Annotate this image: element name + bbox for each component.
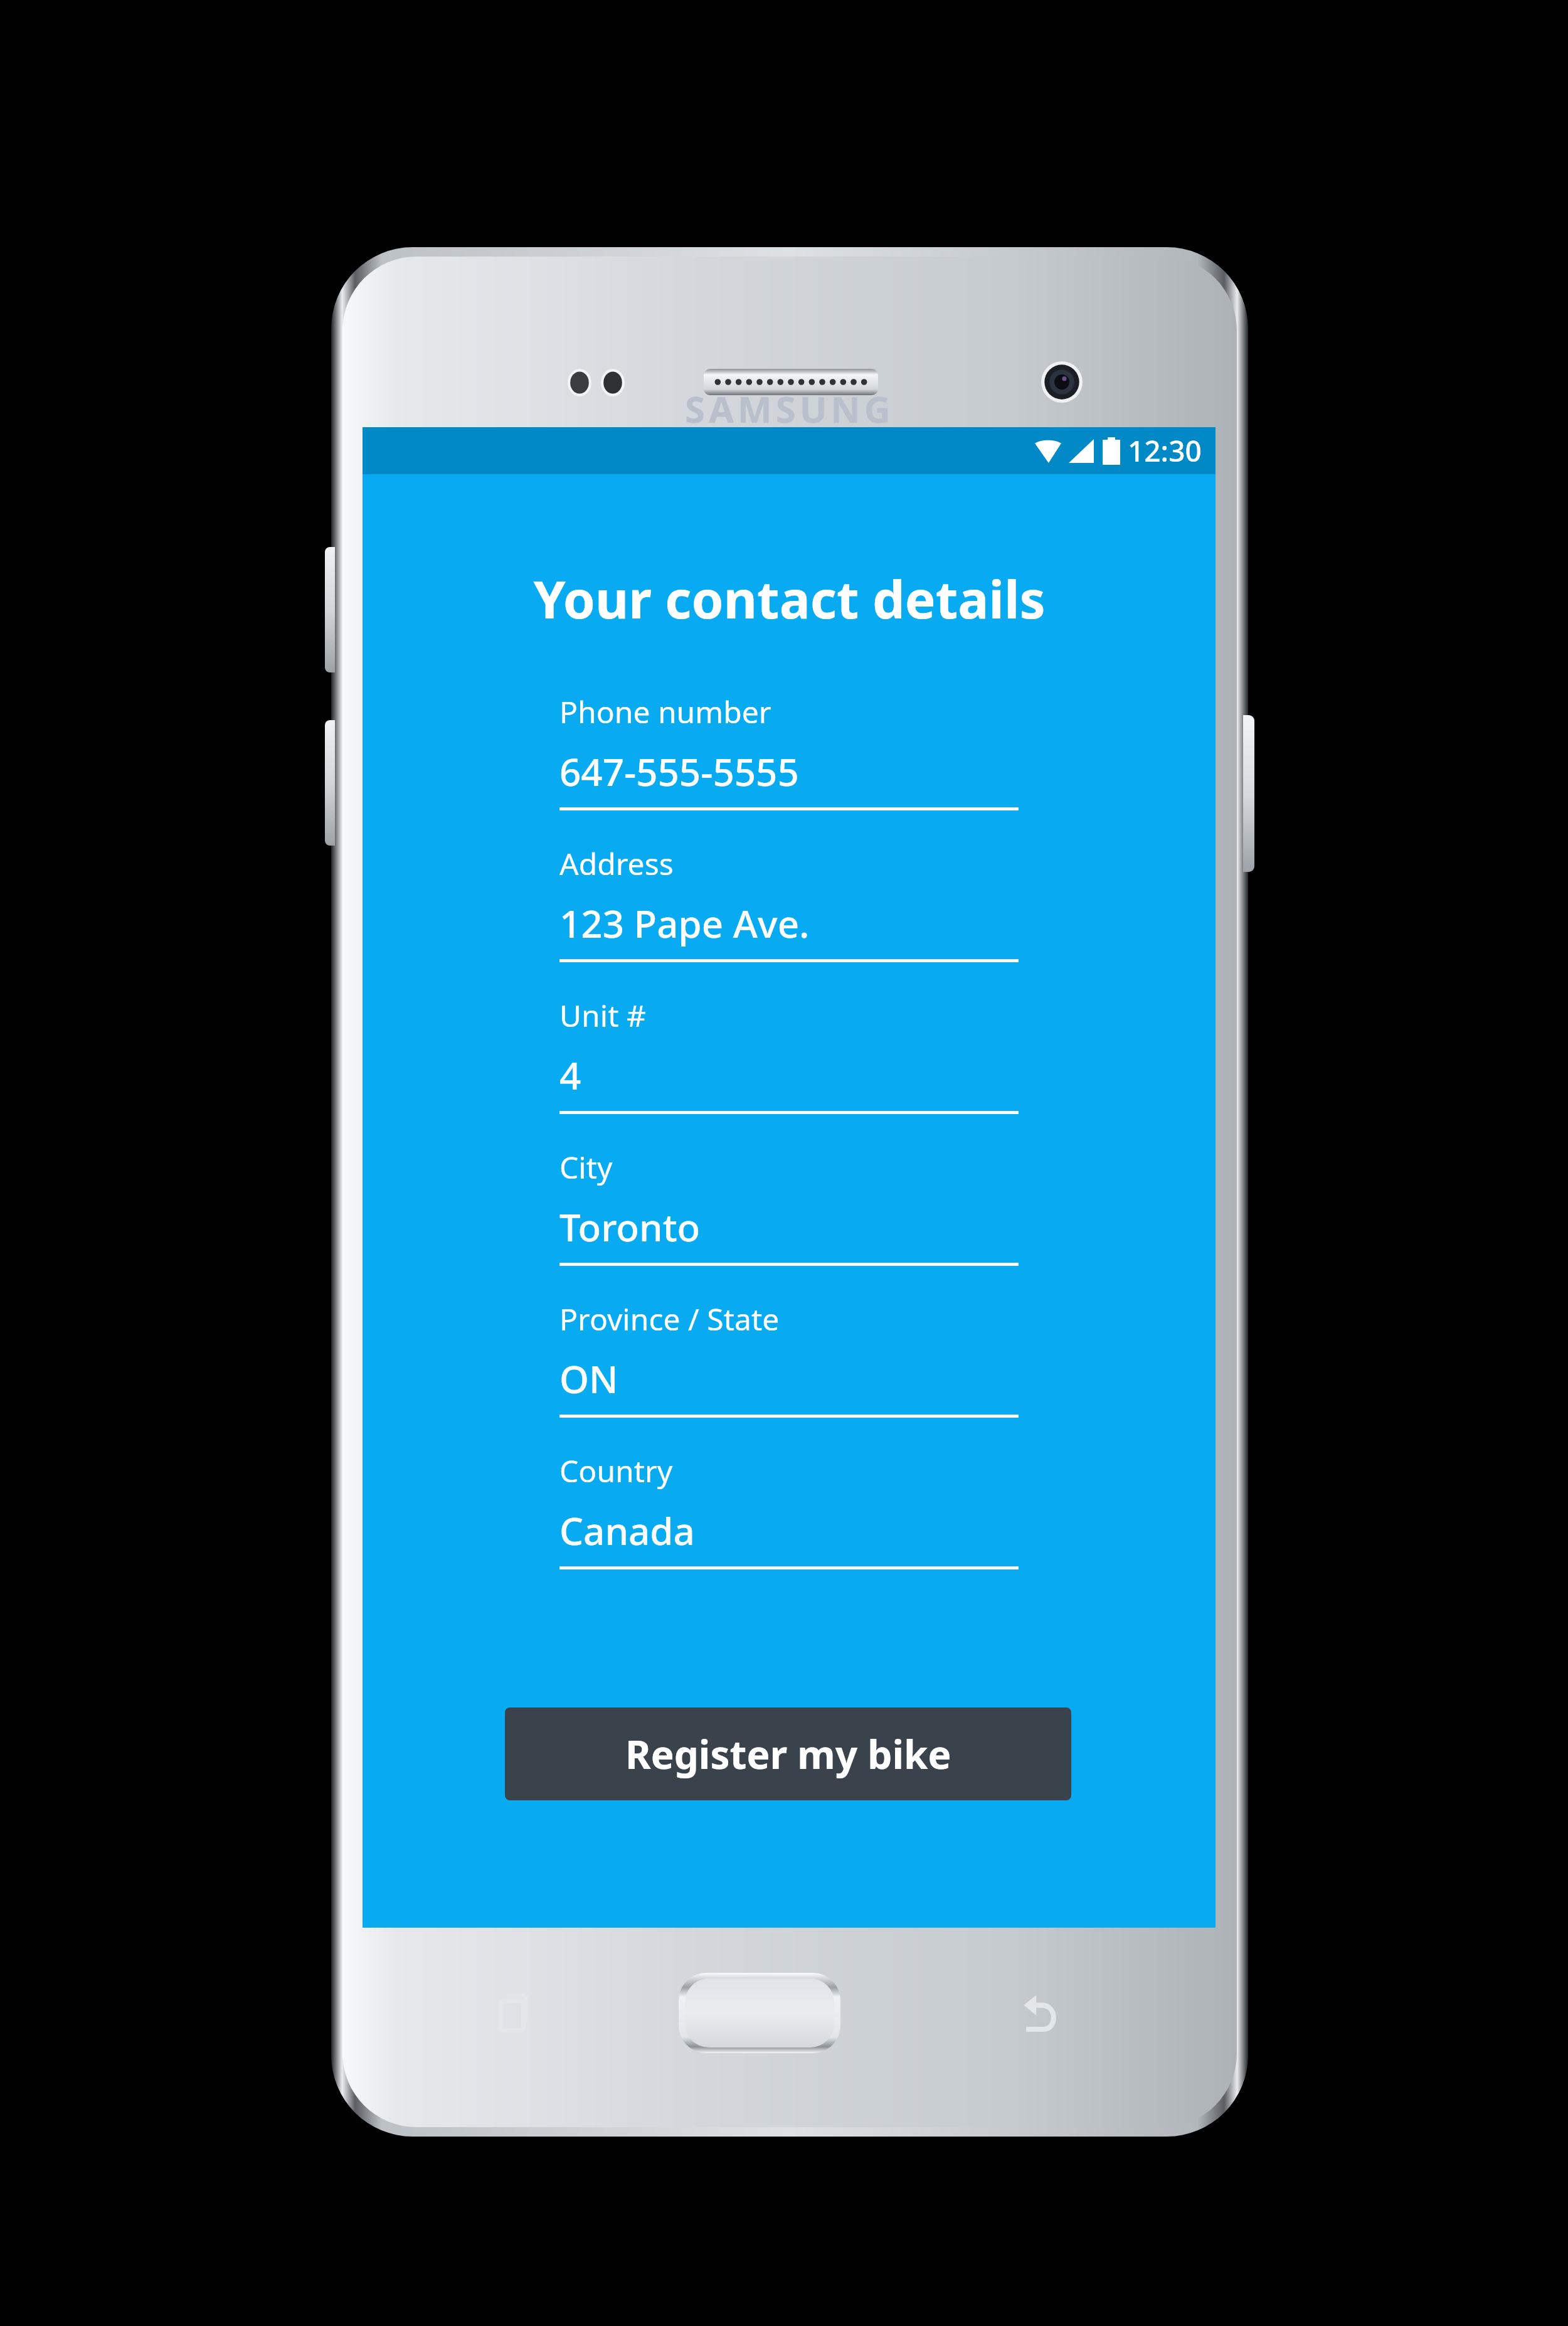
button[interactable]: Unit # <box>559 995 1019 1147</box>
button[interactable]: Register my bike <box>505 1707 1071 1800</box>
button[interactable]: Home <box>679 1973 840 2053</box>
button[interactable]: Country <box>559 1450 1019 1602</box>
staticText: City <box>559 1147 613 1187</box>
staticText: Province / State <box>559 1298 780 1339</box>
button[interactable]: Volume down <box>325 720 335 846</box>
staticText: Phone number <box>559 691 771 732</box>
button[interactable]: Phone number <box>559 691 1019 843</box>
button[interactable]: Power <box>1243 715 1254 872</box>
staticText: Unit # <box>559 995 646 1036</box>
staticText: SAMSUNG <box>685 384 894 433</box>
button[interactable]: Volume up <box>325 547 335 672</box>
button[interactable]: City <box>559 1147 1019 1298</box>
staticText: 4 <box>559 1049 581 1101</box>
staticText: Toronto <box>559 1201 701 1253</box>
staticText: Country <box>559 1450 673 1491</box>
staticText: Your contact details <box>533 563 1046 634</box>
staticText: Address <box>559 843 674 884</box>
button[interactable]: Address <box>559 843 1019 995</box>
staticText: 12:30 <box>1128 431 1202 470</box>
staticText: ON <box>559 1353 618 1405</box>
staticText: Register my bike <box>625 1728 951 1780</box>
button[interactable]: Back <box>1019 1994 1058 2032</box>
staticText: 123 Pape Ave. <box>559 898 810 949</box>
staticText: Canada <box>559 1505 695 1556</box>
button[interactable]: Province / State <box>559 1298 1019 1450</box>
staticText: 647-555-5555 <box>559 746 799 797</box>
